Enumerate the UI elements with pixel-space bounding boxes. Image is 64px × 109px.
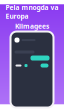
staticText: Kilmagees xyxy=(15,22,49,31)
staticText: Pela mnogda va Europa xyxy=(5,3,58,21)
